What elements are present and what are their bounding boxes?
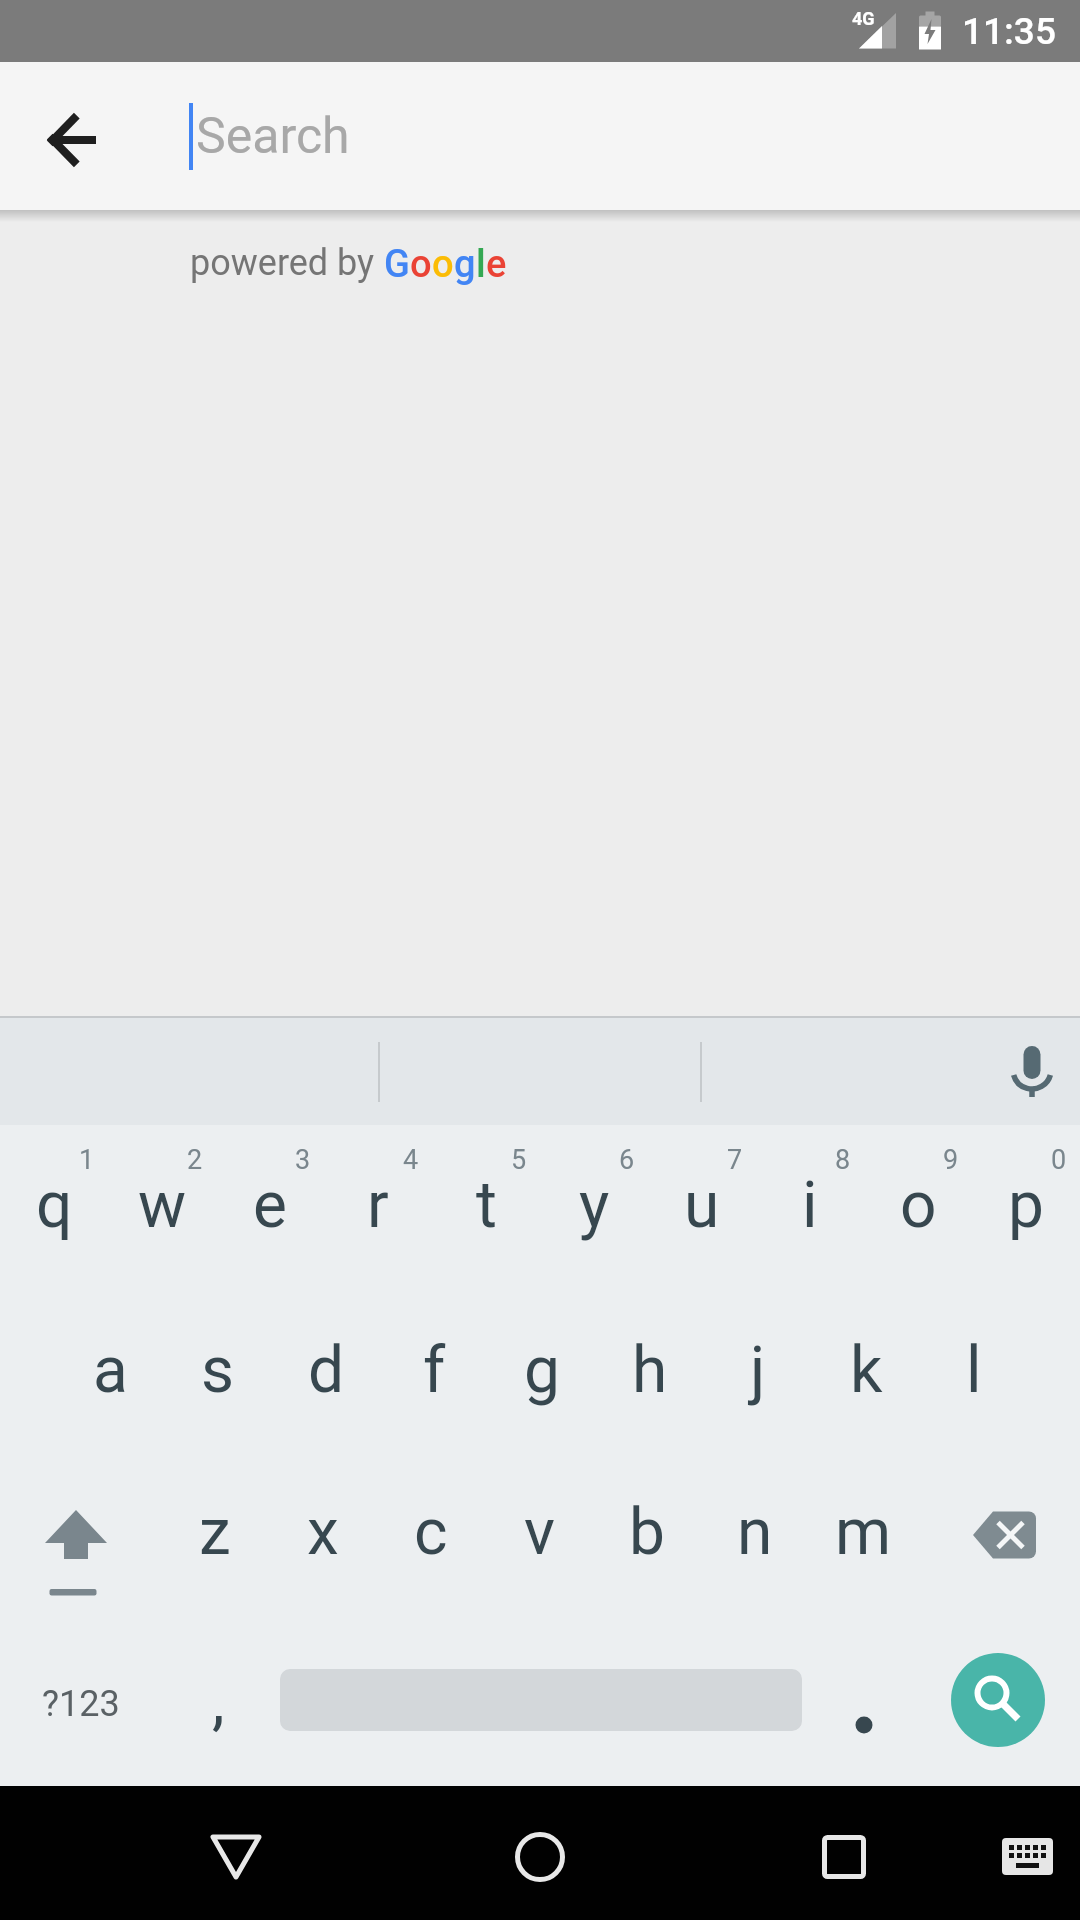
staticText: c bbox=[414, 1495, 448, 1570]
staticText: p bbox=[1008, 1168, 1044, 1243]
button[interactable] bbox=[160, 1786, 312, 1920]
button[interactable]: r bbox=[324, 1125, 432, 1290]
button[interactable]: x bbox=[269, 1455, 377, 1609]
button[interactable]: v bbox=[485, 1455, 593, 1609]
button[interactable]: Search bbox=[189, 62, 1080, 210]
staticText: u bbox=[684, 1168, 720, 1243]
staticText: o bbox=[410, 242, 432, 287]
staticText: z bbox=[199, 1495, 231, 1570]
button[interactable]: , bbox=[164, 1621, 272, 1786]
button[interactable] bbox=[985, 1786, 1070, 1920]
button[interactable]: q bbox=[0, 1125, 108, 1290]
button[interactable]: k bbox=[812, 1290, 920, 1450]
staticText: e bbox=[253, 1168, 287, 1243]
staticText: r bbox=[367, 1168, 389, 1243]
staticText: o bbox=[900, 1168, 937, 1243]
button[interactable]: e bbox=[216, 1125, 324, 1290]
staticText: l bbox=[476, 242, 486, 287]
button[interactable]: u bbox=[648, 1125, 756, 1290]
staticText: t bbox=[476, 1168, 497, 1243]
button[interactable] bbox=[0, 1455, 161, 1621]
staticText: b bbox=[629, 1495, 665, 1570]
button[interactable]: p bbox=[972, 1125, 1080, 1290]
staticText: 6 bbox=[619, 1144, 635, 1176]
button[interactable]: o bbox=[864, 1125, 972, 1290]
staticText: powered by bbox=[190, 242, 384, 284]
button[interactable] bbox=[0, 62, 96, 210]
button[interactable]: h bbox=[596, 1290, 704, 1450]
staticText: ?123 bbox=[42, 1683, 120, 1725]
staticText: 1 bbox=[79, 1144, 95, 1176]
button[interactable]: ?123 bbox=[0, 1621, 161, 1786]
staticText: v bbox=[524, 1495, 555, 1570]
staticText: j bbox=[750, 1333, 766, 1408]
staticText: d bbox=[308, 1333, 345, 1408]
staticText: s bbox=[201, 1333, 235, 1408]
button[interactable] bbox=[768, 1786, 920, 1920]
button[interactable]: m bbox=[809, 1455, 917, 1609]
staticText: m bbox=[835, 1495, 892, 1570]
button[interactable]: l bbox=[920, 1290, 1028, 1450]
button[interactable]: c bbox=[377, 1455, 485, 1609]
button[interactable]: y bbox=[540, 1125, 648, 1290]
staticText: x bbox=[307, 1495, 339, 1570]
staticText: e bbox=[486, 242, 507, 287]
button[interactable]: i bbox=[756, 1125, 864, 1290]
staticText: 9 bbox=[943, 1144, 959, 1176]
staticText: q bbox=[36, 1168, 73, 1243]
button[interactable]: b bbox=[593, 1455, 701, 1609]
staticText: g bbox=[524, 1333, 560, 1408]
staticText: k bbox=[850, 1333, 883, 1408]
staticText: a bbox=[93, 1333, 128, 1408]
button[interactable] bbox=[464, 1786, 616, 1920]
staticText: 11:35 bbox=[962, 10, 1056, 53]
button[interactable] bbox=[951, 1653, 1045, 1747]
button[interactable] bbox=[984, 1016, 1080, 1125]
button[interactable]: z bbox=[161, 1455, 269, 1609]
staticText: n bbox=[737, 1495, 773, 1570]
staticText: g bbox=[454, 242, 476, 287]
staticText: 3 bbox=[295, 1144, 311, 1176]
button[interactable]: w bbox=[108, 1125, 216, 1290]
staticText: 2 bbox=[187, 1144, 203, 1176]
staticText: G bbox=[384, 242, 410, 287]
staticText: i bbox=[802, 1168, 818, 1243]
staticText: 0 bbox=[1051, 1144, 1067, 1176]
staticText: 4G bbox=[852, 8, 875, 29]
staticText: w bbox=[138, 1168, 187, 1243]
staticText: f bbox=[423, 1333, 446, 1408]
button[interactable]: a bbox=[56, 1290, 164, 1450]
staticText: 4 bbox=[403, 1144, 419, 1176]
staticText: l bbox=[966, 1333, 982, 1408]
staticText: 8 bbox=[835, 1144, 851, 1176]
staticText: y bbox=[579, 1168, 610, 1243]
staticText: Search bbox=[196, 107, 350, 166]
button[interactable]: s bbox=[164, 1290, 272, 1450]
staticText: o bbox=[432, 242, 454, 287]
staticText: , bbox=[212, 1664, 225, 1739]
staticText: h bbox=[632, 1333, 668, 1408]
button[interactable]: f bbox=[380, 1290, 488, 1450]
button[interactable]: n bbox=[701, 1455, 809, 1609]
staticText: 5 bbox=[511, 1144, 527, 1176]
button[interactable]: j bbox=[704, 1290, 812, 1450]
button[interactable]: d bbox=[272, 1290, 380, 1450]
button[interactable]: g bbox=[488, 1290, 596, 1450]
button[interactable] bbox=[917, 1455, 1080, 1621]
button[interactable]: t bbox=[432, 1125, 540, 1290]
staticText: 7 bbox=[727, 1144, 743, 1176]
